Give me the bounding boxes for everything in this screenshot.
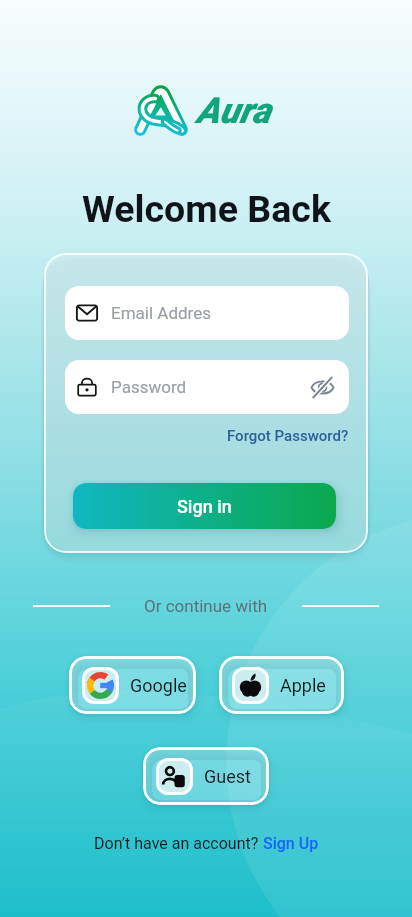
staticText: Aura bbox=[196, 90, 271, 132]
staticText: Apple bbox=[280, 675, 326, 696]
staticText: Sign in bbox=[177, 496, 232, 517]
button[interactable]: Email Addres bbox=[65, 286, 349, 340]
staticText: Don’t have an account? bbox=[94, 834, 263, 853]
button[interactable]: Forgot Password? bbox=[227, 427, 349, 445]
button[interactable]: Apple bbox=[219, 656, 344, 714]
staticText: Sign Up bbox=[263, 834, 319, 853]
staticText: Or continue with bbox=[144, 596, 268, 616]
button[interactable]: Google bbox=[69, 656, 196, 714]
staticText: Guest bbox=[204, 766, 251, 787]
button[interactable]: Sign in bbox=[73, 483, 336, 529]
staticText: Google bbox=[130, 675, 187, 696]
button[interactable]: Guest bbox=[143, 747, 269, 805]
button[interactable]: Password bbox=[65, 360, 349, 414]
staticText: Email Addres bbox=[111, 303, 211, 323]
staticText: Password bbox=[111, 377, 187, 397]
staticText: Welcome Back bbox=[82, 187, 331, 231]
staticText: Forgot Password? bbox=[227, 427, 349, 445]
button[interactable]: Sign Up bbox=[263, 834, 319, 853]
button[interactable]: Show password bbox=[307, 372, 337, 402]
